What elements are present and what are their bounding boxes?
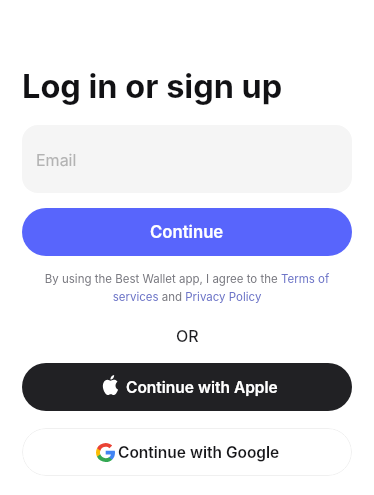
staticText: Continue with Google (118, 443, 280, 462)
staticText: Email (36, 150, 77, 169)
staticText: By using the Best Wallet app, I agree to… (22, 272, 352, 303)
button[interactable]: Continue with Google (22, 428, 352, 476)
button[interactable]: Email address input field (22, 125, 352, 193)
staticText: Continue with Apple (126, 378, 278, 397)
staticText: OR (176, 326, 199, 345)
button[interactable]: Continue (22, 208, 352, 256)
button[interactable]: Continue with Apple (22, 363, 352, 411)
staticText: Log in or sign up (22, 67, 283, 106)
staticText: Continue (150, 222, 224, 242)
